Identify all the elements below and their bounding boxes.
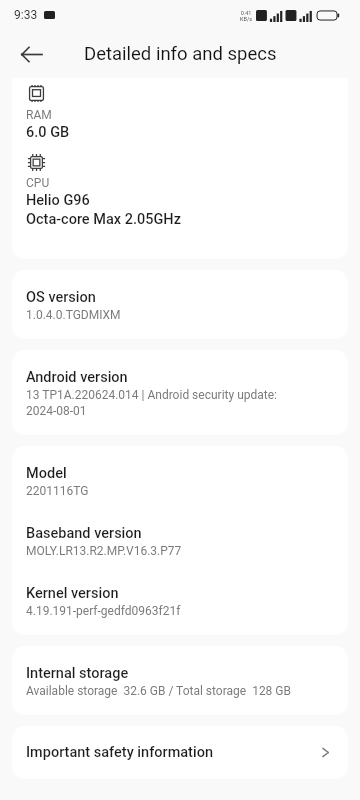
staticText: CPU bbox=[26, 176, 50, 190]
staticText: 6.0 GB bbox=[26, 124, 70, 141]
staticText: 4.19.191-perf-gedfd0963f21f bbox=[26, 604, 181, 618]
staticText: Helio G96 Octa-core Max 2.05GHz bbox=[26, 192, 181, 228]
staticText: 1.0.4.0.TGDMIXM bbox=[26, 308, 121, 322]
staticText: 0.41 KB/s bbox=[240, 10, 252, 22]
staticText: RAM bbox=[26, 108, 52, 122]
staticText: MOLY.LR13.R2.MP.V16.3.P77 bbox=[26, 544, 182, 558]
staticText: Kernel version bbox=[26, 585, 119, 602]
button[interactable]: Back bbox=[14, 37, 48, 71]
staticText: Important safety information bbox=[26, 744, 319, 761]
staticText: Baseband version bbox=[26, 525, 142, 542]
staticText: Android version bbox=[26, 369, 128, 386]
staticText: 13 TP1A.220624.014 | Android security up… bbox=[26, 388, 277, 418]
button[interactable]: Important safety information bbox=[12, 726, 348, 779]
staticText: Available storage 32.6 GB / Total storag… bbox=[26, 684, 291, 698]
staticText: OS version bbox=[26, 289, 96, 306]
staticText: Detailed info and specs bbox=[84, 43, 277, 65]
staticText: Model bbox=[26, 465, 67, 482]
staticText: 2201116TG bbox=[26, 484, 89, 498]
staticText: 9:33 bbox=[14, 8, 38, 22]
staticText: Internal storage bbox=[26, 665, 129, 682]
